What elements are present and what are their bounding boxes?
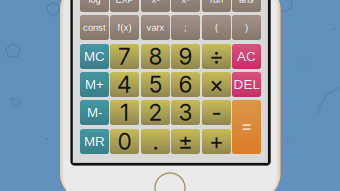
staticText: 4 — [117, 71, 132, 98]
button[interactable]: 7 — [110, 44, 139, 69]
button[interactable]: ans — [232, 0, 261, 12]
button[interactable]: 9 — [171, 44, 200, 69]
button[interactable]: 4 — [110, 72, 139, 97]
button[interactable]: const — [80, 15, 109, 40]
button[interactable]: x² — [141, 0, 170, 12]
button[interactable]: EXP — [110, 0, 139, 12]
staticText: log — [88, 0, 100, 5]
staticText: EXP — [115, 0, 133, 5]
button[interactable]: = — [232, 100, 261, 154]
staticText: MC — [84, 49, 105, 64]
staticText: × — [209, 71, 224, 98]
staticText: = — [242, 118, 251, 136]
staticText: f(x) — [117, 22, 131, 33]
staticText: DEL — [233, 77, 259, 92]
button[interactable]: run — [202, 0, 231, 12]
staticText: ÷ — [209, 43, 224, 70]
button[interactable]: DEL — [232, 72, 261, 97]
staticText: const — [83, 22, 106, 33]
button[interactable]: . — [141, 129, 170, 154]
button[interactable]: f(x) — [110, 15, 139, 40]
staticText: ± — [178, 128, 193, 155]
staticText: 2 — [148, 99, 162, 126]
staticText: M+ — [85, 77, 104, 92]
staticText: x² — [151, 0, 159, 5]
button[interactable]: AC — [232, 44, 261, 69]
button[interactable]: - — [202, 100, 231, 125]
staticText: 5 — [149, 71, 162, 98]
button[interactable]: ) — [232, 15, 261, 40]
staticText: run — [210, 0, 223, 5]
staticText: MR — [84, 134, 105, 149]
staticText: 0 — [117, 128, 131, 155]
button[interactable]: 5 — [141, 72, 170, 97]
staticText: + — [209, 128, 224, 155]
button[interactable]: xⁿ — [171, 0, 200, 12]
staticText: . — [152, 128, 158, 155]
button[interactable]: 3 — [171, 100, 200, 125]
staticText: ) — [245, 22, 248, 33]
staticText: 8 — [148, 43, 162, 70]
staticText: varx — [146, 22, 164, 33]
button[interactable]: + — [202, 129, 231, 154]
button[interactable]: 0 — [110, 129, 139, 154]
staticText: 9 — [178, 43, 192, 70]
button[interactable]: log — [80, 0, 109, 12]
button[interactable]: ; — [171, 15, 200, 40]
staticText: 3 — [178, 99, 192, 126]
button[interactable]: 2 — [141, 100, 170, 125]
staticText: ( — [215, 22, 218, 33]
button[interactable]: MR — [80, 129, 109, 154]
button[interactable]: M+ — [80, 72, 109, 97]
button[interactable]: 6 — [171, 72, 200, 97]
staticText: 1 — [120, 99, 129, 126]
button[interactable]: ± — [171, 129, 200, 154]
button[interactable]: 1 — [110, 100, 139, 125]
button[interactable]: ÷ — [202, 44, 231, 69]
button[interactable]: varx — [141, 15, 170, 40]
staticText: 7 — [118, 43, 131, 70]
staticText: AC — [237, 49, 256, 64]
button[interactable]: 8 — [141, 44, 170, 69]
staticText: ; — [184, 22, 187, 33]
staticText: xⁿ — [181, 0, 189, 5]
staticText: M- — [87, 105, 102, 120]
button[interactable]: × — [202, 72, 231, 97]
staticText: ans — [239, 0, 254, 5]
button[interactable]: M- — [80, 100, 109, 125]
staticText: - — [211, 99, 221, 126]
staticText: 6 — [178, 71, 192, 98]
button[interactable]: MC — [80, 44, 109, 69]
button[interactable]: ( — [202, 15, 231, 40]
